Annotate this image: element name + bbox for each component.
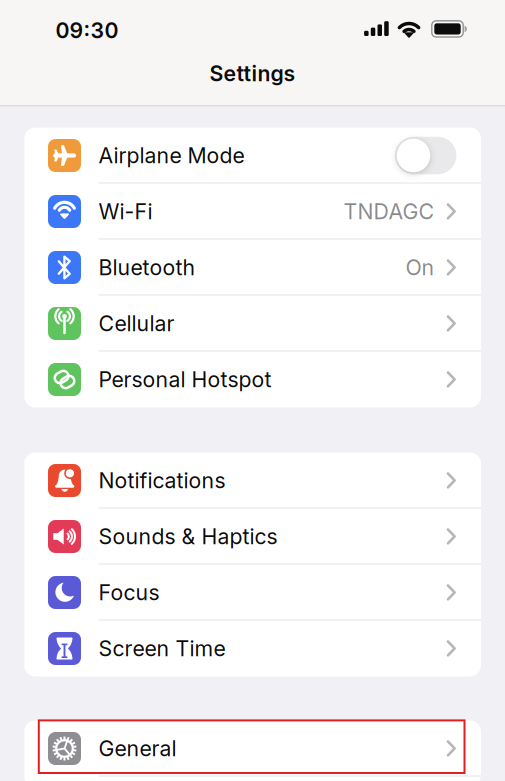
button[interactable]: Wi-Fi <box>24 183 481 239</box>
button[interactable]: Airplane Mode <box>395 137 456 174</box>
staticText: Screen Time <box>98 636 225 661</box>
staticText: Settings <box>209 61 295 86</box>
staticText: TNDAGC <box>343 199 434 224</box>
staticText: Cellular <box>98 311 174 336</box>
staticText: Sounds & Haptics <box>98 524 277 549</box>
staticText: General <box>98 736 176 761</box>
button[interactable]: Screen Time <box>24 620 481 676</box>
staticText: Focus <box>98 580 159 605</box>
button[interactable]: General <box>24 720 481 776</box>
staticText: Bluetooth <box>98 255 195 280</box>
button[interactable]: Personal Hotspot <box>24 351 481 407</box>
staticText: Airplane Mode <box>98 143 244 168</box>
button[interactable]: Bluetooth <box>24 239 481 295</box>
staticText: 09:30 <box>55 18 118 43</box>
button[interactable]: Focus <box>24 564 481 620</box>
button[interactable]: Notifications <box>24 452 481 508</box>
staticText: Wi-Fi <box>98 199 152 224</box>
button[interactable]: Cellular <box>24 295 481 351</box>
staticText: On <box>405 255 434 280</box>
button[interactable]: Sounds & Haptics <box>24 508 481 564</box>
staticText: Personal Hotspot <box>98 367 271 392</box>
staticText: Notifications <box>98 468 225 493</box>
